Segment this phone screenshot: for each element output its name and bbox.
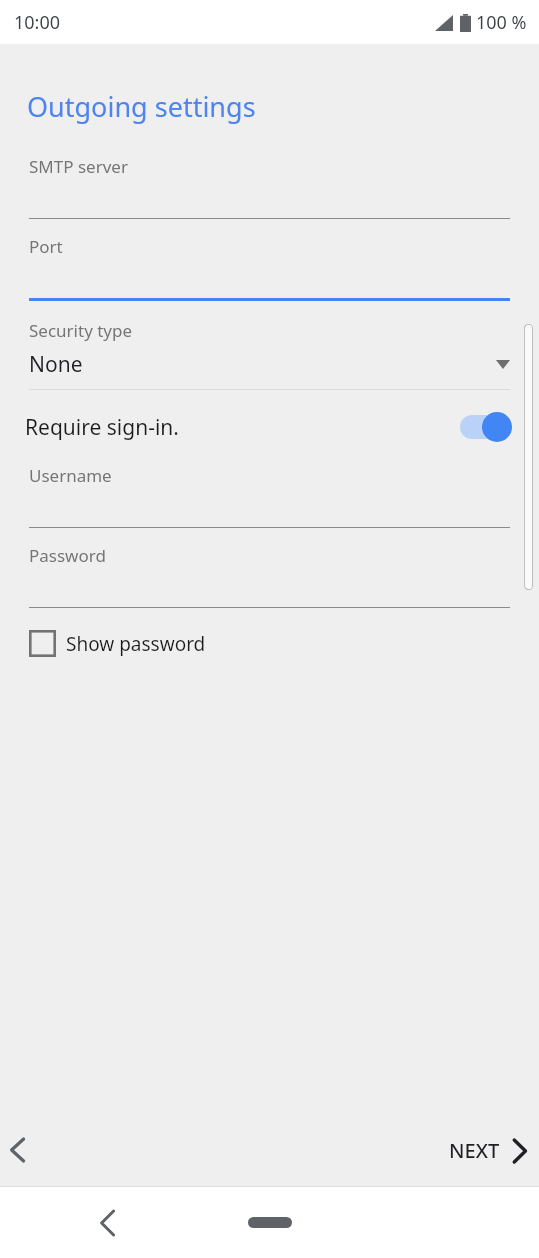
button[interactable]: Username: [0, 464, 539, 528]
button[interactable]: Security type: [0, 319, 539, 390]
staticText: Security type: [29, 319, 133, 342]
button[interactable]: SMTP server: [0, 155, 539, 219]
staticText: None: [29, 350, 496, 379]
staticText: Outgoing settings: [27, 88, 256, 125]
button[interactable]: Show password: [0, 626, 222, 661]
button[interactable]: System back: [92, 1203, 124, 1243]
staticText: Require sign-in.: [25, 413, 458, 442]
staticText: Username: [29, 464, 112, 487]
button[interactable]: Home: [238, 1207, 302, 1238]
button[interactable]: Back: [0, 1125, 42, 1175]
staticText: Password: [29, 544, 106, 567]
staticText: NEXT: [449, 1137, 500, 1164]
button[interactable]: Password: [0, 544, 539, 608]
button[interactable]: Require sign-in.: [0, 412, 539, 442]
staticText: 100 %: [476, 10, 527, 35]
staticText: Show password: [66, 631, 206, 657]
staticText: 10:00: [14, 10, 61, 35]
button[interactable]: NEXT: [433, 1123, 539, 1178]
button[interactable]: Port: [0, 235, 539, 301]
staticText: SMTP server: [29, 155, 128, 178]
staticText: Port: [29, 235, 63, 258]
